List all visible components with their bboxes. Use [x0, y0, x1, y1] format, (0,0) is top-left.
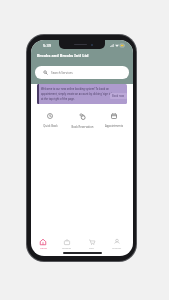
- staticText: Home: [40, 246, 47, 249]
- staticText: Brooks and Brooks Intl Ltd: [37, 53, 89, 58]
- other: Services: [64, 239, 70, 245]
- button[interactable]: Home: [31, 239, 55, 249]
- button[interactable]: Cart: [79, 239, 104, 249]
- staticText: Search Services: [51, 71, 73, 75]
- button[interactable]: Book Reservation: [67, 113, 97, 129]
- staticText: Cart: [89, 246, 94, 249]
- other: Cart: [89, 239, 95, 245]
- staticText: Book now: [112, 94, 125, 98]
- other: Account: [114, 239, 120, 245]
- staticText: Account: [112, 246, 122, 249]
- staticText: Services: [62, 246, 72, 249]
- button[interactable]: Book now: [110, 93, 127, 99]
- staticText: Quick Book: [43, 124, 58, 128]
- staticText: Welcome to our new online booking system…: [41, 87, 114, 100]
- staticText: 5:39: [43, 43, 51, 48]
- staticText: Appointments: [105, 124, 123, 128]
- button[interactable]: Services: [55, 239, 79, 249]
- staticText: Book Reservation: [71, 125, 94, 129]
- button[interactable]: Account: [104, 239, 129, 249]
- button[interactable]: Appointments: [99, 113, 129, 128]
- other: Home: [40, 239, 46, 245]
- button[interactable]: Quick Book: [35, 113, 65, 128]
- button[interactable]: Search Services: [35, 66, 129, 79]
